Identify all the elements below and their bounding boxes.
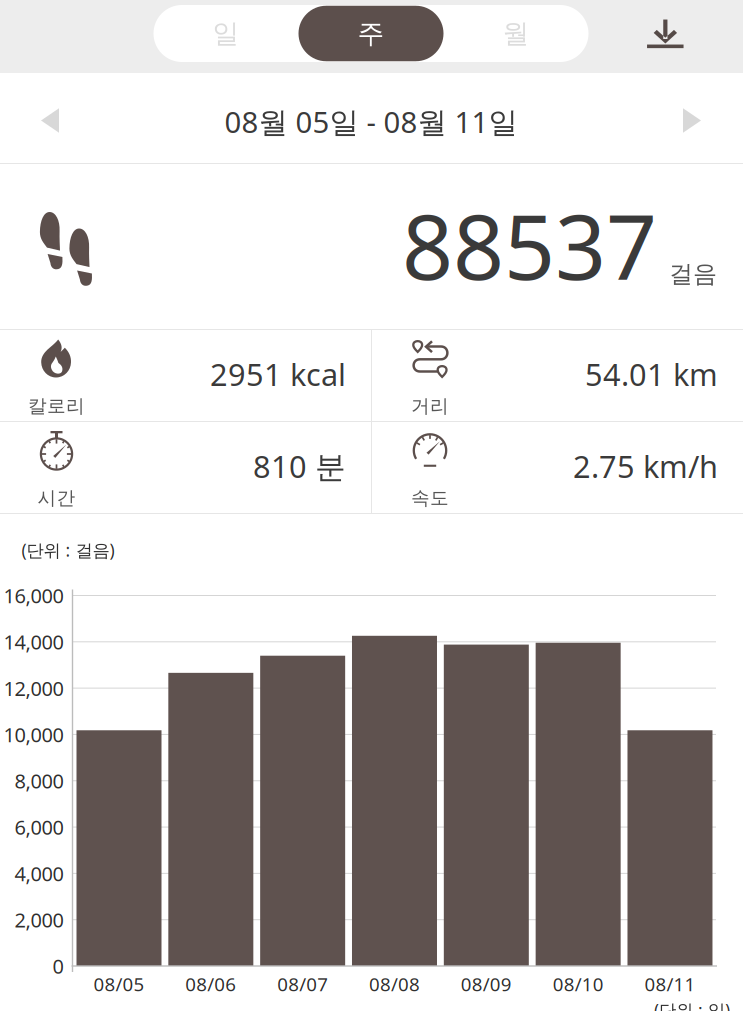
button[interactable]: 월 — [443, 5, 588, 62]
staticText: 10,000 — [3, 721, 63, 748]
staticText: 08/07 — [277, 972, 328, 996]
staticText: 08/06 — [185, 972, 236, 996]
staticText: 6,000 — [14, 814, 63, 840]
staticText: 주 — [357, 17, 384, 50]
button[interactable]: Download — [647, 19, 683, 48]
staticText: (단위 : 일) — [654, 998, 730, 1011]
staticText: 시간 — [37, 486, 75, 509]
staticText: 14,000 — [3, 628, 63, 655]
staticText: 속도 — [411, 486, 449, 509]
staticText: 2,000 — [14, 906, 63, 933]
staticText: 2.75 km/h — [573, 446, 718, 486]
staticText: 8,000 — [14, 767, 63, 794]
staticText: 0 — [52, 953, 63, 979]
staticText: 4,000 — [14, 860, 63, 887]
staticText: 08/11 — [644, 972, 695, 996]
staticText: 88537 — [402, 186, 657, 304]
staticText: 월 — [502, 17, 529, 50]
staticText: 08/08 — [369, 972, 420, 996]
staticText: 거리 — [411, 394, 449, 417]
staticText: 칼로리 — [28, 394, 85, 417]
staticText: 일 — [212, 17, 239, 50]
staticText: 54.01 km — [585, 354, 718, 394]
staticText: 08/09 — [461, 972, 512, 996]
button[interactable]: 주 — [298, 6, 443, 61]
staticText: 08/10 — [553, 972, 604, 996]
staticText: 810 분 — [253, 446, 346, 486]
button[interactable]: 08월 05일 - 08월 11일 — [208, 88, 533, 155]
button[interactable]: 일 — [153, 5, 298, 62]
button[interactable]: Next week — [661, 86, 723, 155]
staticText: 16,000 — [3, 582, 63, 609]
staticText: 2951 kcal — [210, 354, 346, 394]
staticText: 08월 05일 - 08월 11일 — [224, 102, 517, 141]
staticText: (단위 : 걸음) — [21, 538, 114, 561]
staticText: 08/05 — [93, 972, 144, 996]
button[interactable]: Previous week — [19, 86, 81, 155]
staticText: 걸음 — [669, 259, 717, 289]
staticText: 12,000 — [3, 675, 63, 701]
